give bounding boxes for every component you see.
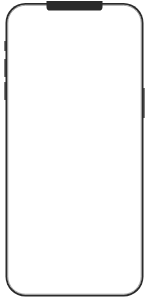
- button[interactable]: Phone device frame: [0, 0, 149, 300]
